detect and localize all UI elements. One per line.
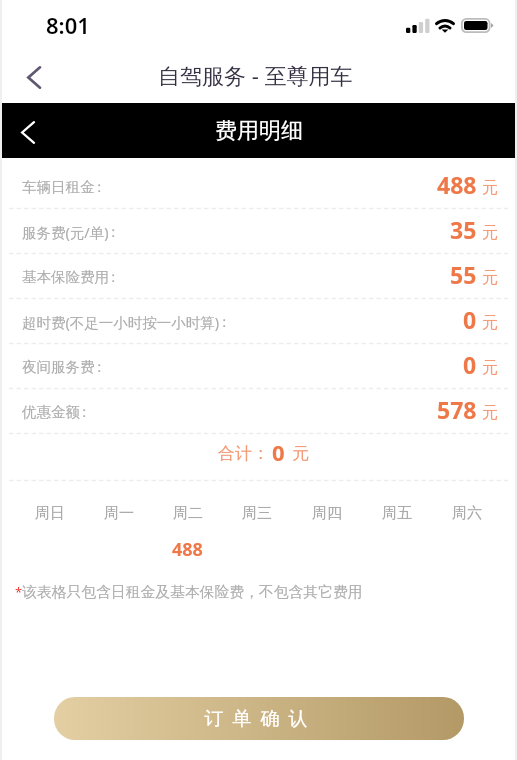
staticText: 488 [172,537,203,562]
staticText: 优惠金额 [22,403,80,421]
staticText: 578 [437,394,477,425]
staticText: 0 [463,349,477,380]
staticText: 周三 [242,504,272,523]
staticText: 费用明细 [215,117,303,145]
staticText: 0 [272,437,285,467]
button[interactable]: 基本保险费用 [2,254,515,298]
staticText: 元 [482,313,498,333]
staticText: 周日 [35,504,65,523]
button[interactable]: 夜间服务费 [2,344,515,388]
button[interactable]: 服务费(元/单) [2,209,515,253]
staticText: 元 [482,403,498,423]
staticText: 服务费(元/单) [22,222,109,242]
staticText: 自驾服务 - 至尊用车 [158,60,353,90]
staticText: 周一 [104,504,134,523]
staticText: ： [106,223,121,241]
staticText: 元 [482,268,498,288]
button[interactable]: 优惠金额 [2,389,515,433]
button[interactable]: 车辆日租金 [2,164,515,208]
staticText: 488 [437,169,477,200]
button[interactable]: Back [2,49,62,101]
staticText: 元 [482,178,498,198]
staticText: 周五 [382,504,412,523]
staticText: 基本保险费用 [22,268,109,286]
staticText: 55 [450,259,477,290]
staticText: 35 [450,214,477,245]
staticText: ： [77,403,92,421]
staticText: ： [217,313,232,331]
staticText: 0 [463,304,477,335]
staticText: 元 [292,443,309,464]
staticText: ： [92,178,107,196]
staticText: ： [92,358,107,376]
button[interactable]: 超时费(不足一小时按一小时算) [2,299,515,343]
staticText: ： [106,268,121,286]
staticText: 周四 [312,504,342,523]
button[interactable]: 订单确认 [54,697,464,740]
staticText: 夜间服务费 [22,358,95,376]
staticText: *该表格只包含日租金及基本保险费，不包含其它费用 [15,583,363,602]
staticText: 元 [482,358,498,378]
staticText: 周二 [173,504,203,523]
staticText: 元 [482,223,498,243]
staticText: 车辆日租金 [22,178,95,196]
staticText: 周六 [452,504,482,523]
staticText: 8:01 [46,10,90,40]
staticText: 订单确认 [200,707,312,731]
staticText: 合计： [218,443,269,464]
button[interactable]: Back [2,105,56,157]
staticText: 超时费(不足一小时按一小时算) [22,312,220,332]
